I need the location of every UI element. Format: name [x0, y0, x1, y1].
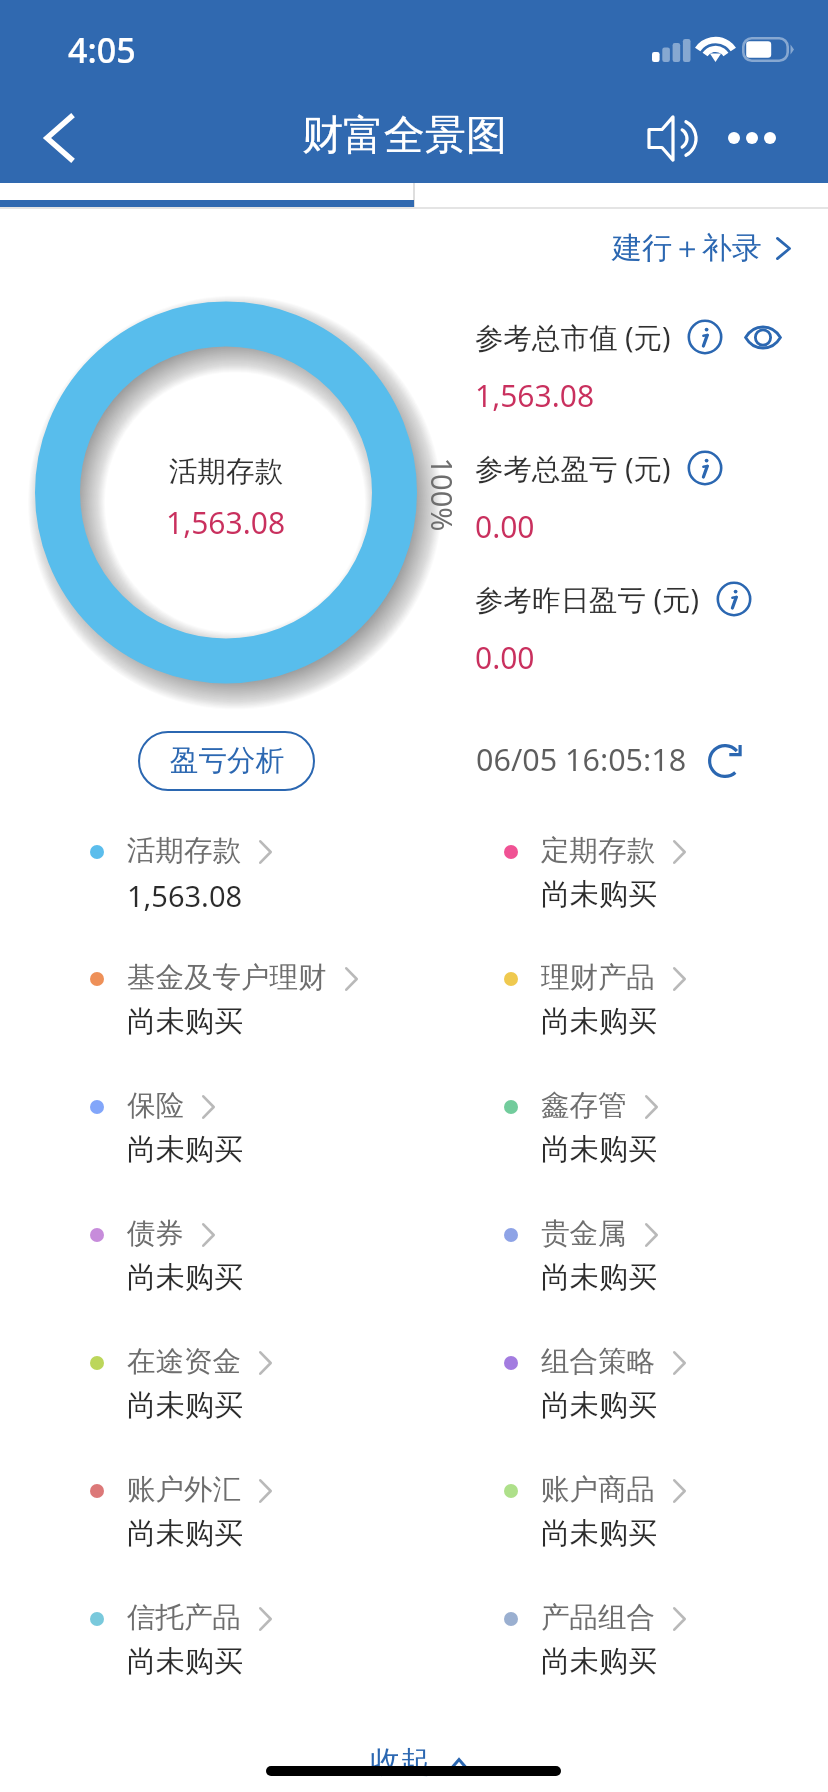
button[interactable]: 账户商品 [480, 1453, 828, 1565]
staticText: 尚未购买 [541, 1131, 657, 1168]
button[interactable]: 建行＋补录 [604, 226, 799, 270]
button[interactable]: Refresh [702, 738, 748, 784]
staticText: 0.00 [475, 506, 535, 547]
staticText: 在途资金 [127, 1344, 241, 1380]
button[interactable]: 保险 [66, 1069, 456, 1181]
staticText: 定期存款 [541, 833, 655, 869]
staticText: 1,563.08 [127, 876, 243, 915]
button[interactable]: 理财产品 [480, 941, 828, 1053]
staticText: 信托产品 [127, 1600, 241, 1636]
button[interactable]: Sound [633, 107, 711, 169]
button[interactable]: 基金及专户理财 [66, 941, 456, 1053]
button[interactable]: 盈亏分析 [138, 731, 315, 791]
staticText: 参考总市值 (元) [475, 318, 671, 356]
staticText: 鑫存管 [541, 1088, 627, 1124]
button[interactable]: Back [20, 108, 98, 168]
staticText: 贵金属 [541, 1216, 627, 1252]
staticText: 1,563.08 [475, 375, 595, 416]
staticText: 尚未购买 [127, 1387, 243, 1424]
staticText: 债券 [127, 1216, 184, 1252]
staticText: 4:05 [68, 27, 136, 73]
staticText: 理财产品 [541, 960, 655, 996]
staticText: 基金及专户理财 [127, 960, 327, 996]
button[interactable]: 活期存款 [16, 282, 436, 702]
staticText: 0.00 [475, 637, 535, 678]
staticText: 组合策略 [541, 1344, 655, 1380]
staticText: 保险 [127, 1088, 184, 1124]
button[interactable]: 信托产品 [66, 1581, 456, 1693]
button[interactable]: 在途资金 [66, 1325, 456, 1437]
staticText: 06/05 16:05:18 [476, 738, 687, 780]
button[interactable]: 债券 [66, 1197, 456, 1309]
button[interactable]: 贵金属 [480, 1197, 828, 1309]
staticText: 1,563.08 [166, 502, 286, 543]
staticText: 活期存款 [127, 833, 241, 869]
staticText: 收起 [370, 1743, 430, 1781]
staticText: 尚未购买 [541, 1387, 657, 1424]
staticText: 参考总盈亏 (元) [475, 449, 671, 487]
button[interactable]: 鑫存管 [480, 1069, 828, 1181]
button[interactable]: 活期存款 [66, 814, 456, 926]
button[interactable]: Information [712, 580, 756, 618]
staticText: 尚未购买 [127, 1515, 243, 1552]
staticText: 建行＋补录 [612, 229, 762, 267]
staticText: 尚未购买 [541, 1515, 657, 1552]
button[interactable]: 收起 [362, 1738, 478, 1786]
staticText: 账户商品 [541, 1472, 655, 1508]
button[interactable]: 定期存款 [480, 814, 828, 926]
staticText: 尚未购买 [127, 1003, 243, 1040]
staticText: 尚未购买 [541, 1259, 657, 1296]
button[interactable]: 产品组合 [480, 1581, 828, 1693]
button[interactable]: 组合策略 [480, 1325, 828, 1437]
staticText: 尚未购买 [541, 1003, 657, 1040]
staticText: 产品组合 [541, 1600, 655, 1636]
staticText: 尚未购买 [541, 1643, 657, 1680]
staticText: 账户外汇 [127, 1472, 241, 1508]
button[interactable]: Toggle amount visibility [741, 318, 785, 356]
button[interactable]: Information [683, 449, 727, 487]
staticText: 财富全景图 [302, 110, 507, 162]
staticText: 尚未购买 [127, 1259, 243, 1296]
button[interactable]: 账户外汇 [66, 1453, 456, 1565]
staticText: 100% [422, 457, 461, 531]
staticText: 尚未购买 [541, 876, 657, 913]
button[interactable]: Information [683, 318, 727, 356]
button[interactable]: More options [714, 108, 790, 168]
staticText: 盈亏分析 [170, 743, 284, 779]
staticText: 尚未购买 [127, 1643, 243, 1680]
staticText: 参考昨日盈亏 (元) [475, 580, 700, 618]
staticText: 活期存款 [169, 454, 283, 490]
staticText: 尚未购买 [127, 1131, 243, 1168]
